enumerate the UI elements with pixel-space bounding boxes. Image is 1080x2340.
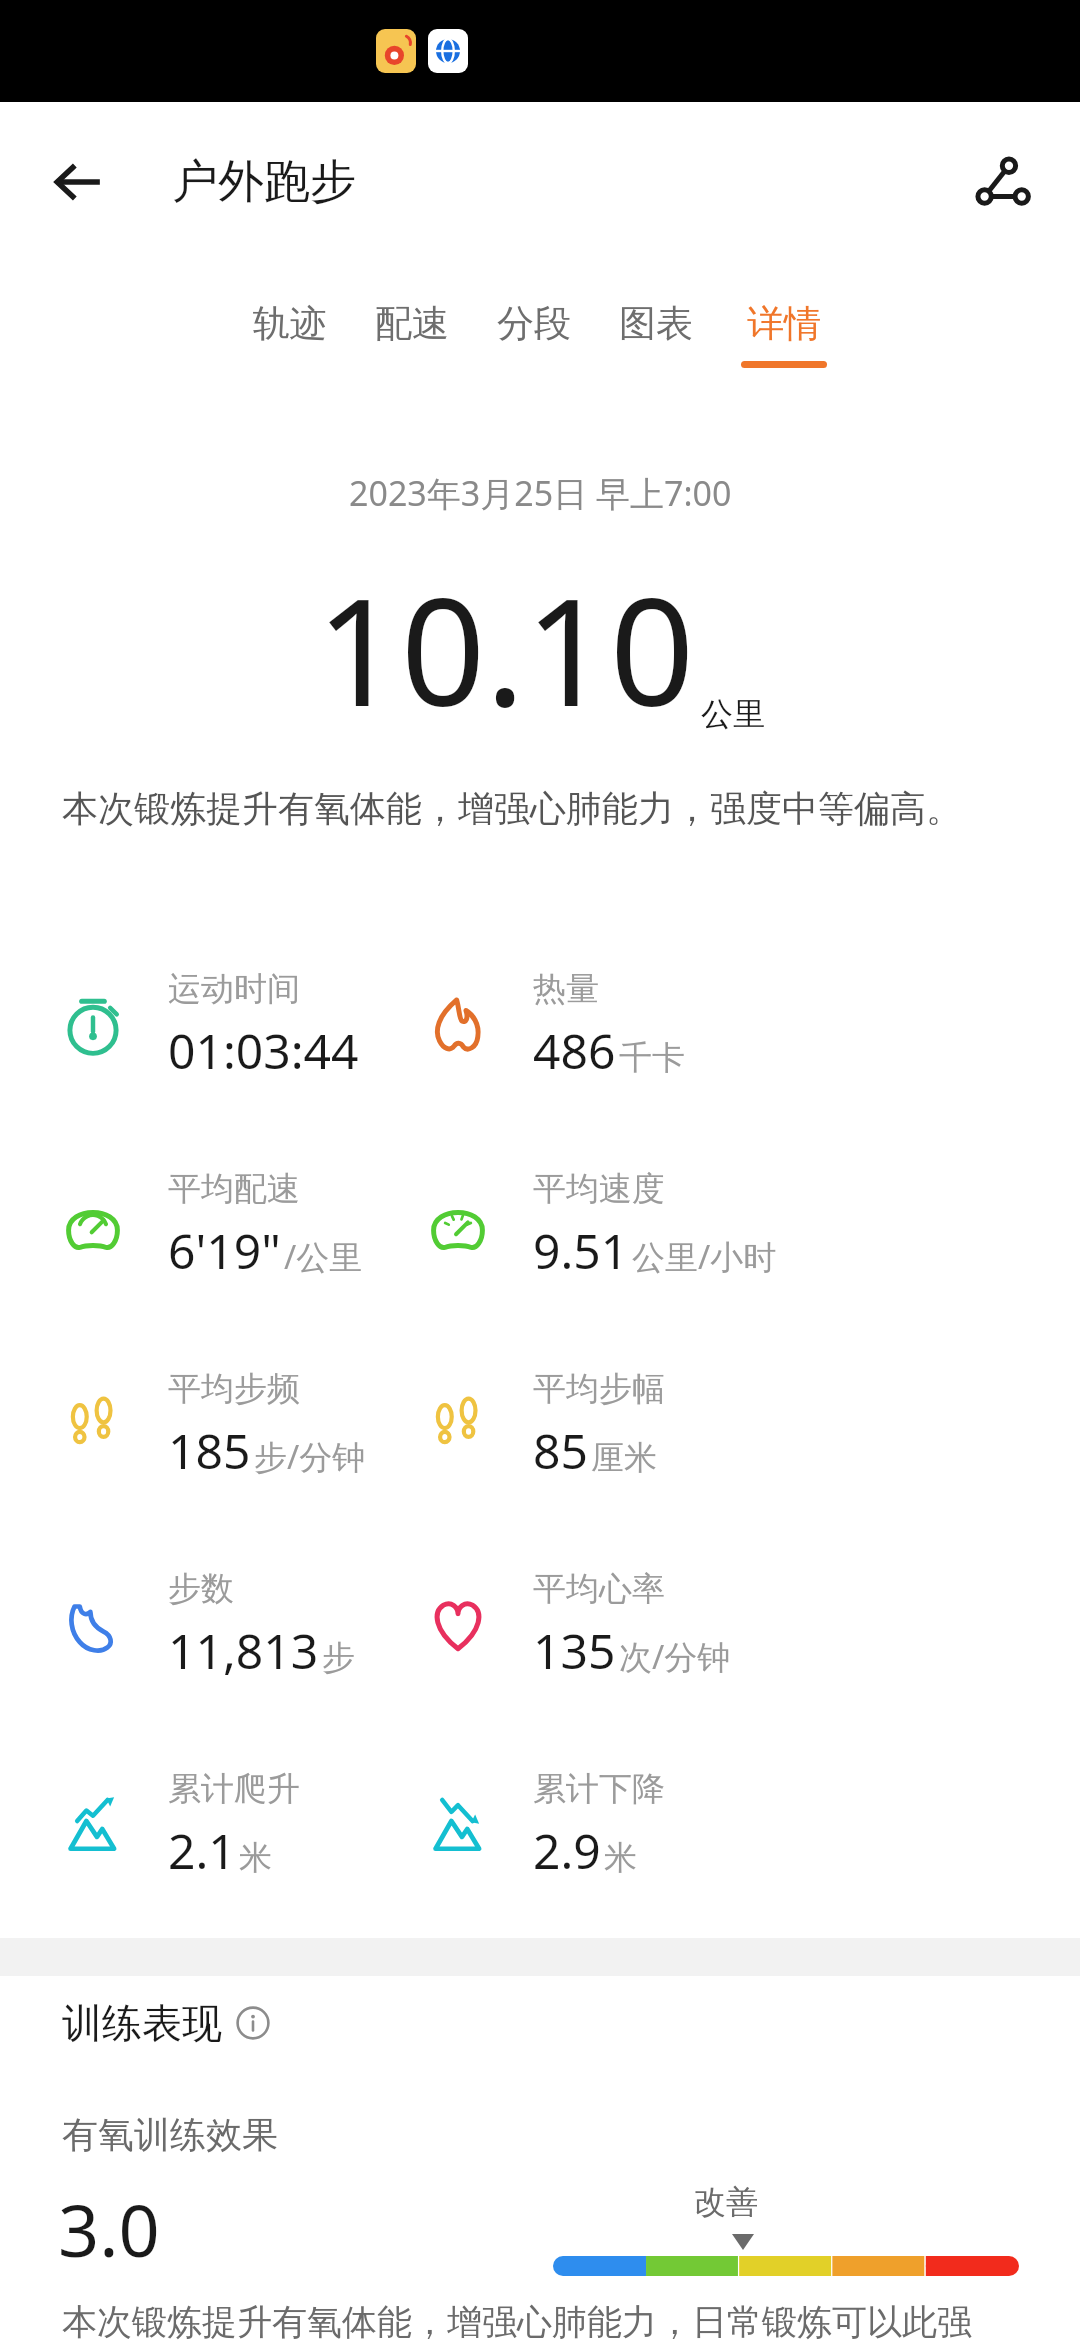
button[interactable]: 平均步幅	[413, 1330, 933, 1520]
button[interactable]: 平均配速	[48, 1130, 568, 1320]
button[interactable]: 累计下降	[413, 1730, 933, 1920]
staticText: 热量	[533, 968, 599, 1010]
staticText: 185	[168, 1418, 251, 1483]
staticText: 累计爬升	[168, 1768, 300, 1810]
button[interactable]: 训练表现	[62, 1998, 270, 2048]
staticText: 轨迹	[253, 300, 327, 347]
staticText: 9.51	[533, 1218, 629, 1283]
button[interactable]: 图表	[619, 300, 693, 361]
staticText: 公里	[701, 694, 765, 734]
staticText: 10.10	[316, 548, 695, 750]
staticText: 步	[322, 1637, 355, 1679]
button[interactable]: Back	[40, 144, 116, 220]
staticText: 3.0	[58, 2180, 160, 2278]
staticText: 步数	[168, 1568, 234, 1610]
staticText: 11,813	[168, 1618, 319, 1683]
staticText: 01:03:44	[168, 1018, 359, 1083]
staticText: 2.1	[168, 1818, 236, 1883]
staticText: 千卡	[619, 1037, 685, 1079]
staticText: 平均配速	[168, 1168, 300, 1210]
staticText: 米	[239, 1837, 272, 1879]
staticText: 训练表现	[62, 1998, 222, 2048]
staticText: 次/分钟	[619, 1634, 731, 1679]
staticText: 累计下降	[533, 1768, 665, 1810]
button[interactable]: 轨迹	[253, 300, 327, 361]
staticText: 户外跑步	[172, 153, 356, 211]
button[interactable]: Share	[960, 140, 1044, 224]
staticText: 2023年3月25日 早上7:00	[349, 470, 732, 516]
staticText: 平均速度	[533, 1168, 665, 1210]
staticText: /公里	[284, 1234, 363, 1279]
staticText: 分段	[497, 300, 571, 347]
staticText: 改善	[694, 2182, 758, 2222]
button[interactable]: 平均步频	[48, 1330, 568, 1520]
staticText: 6'19"	[168, 1218, 281, 1283]
staticText: 厘米	[591, 1437, 657, 1479]
staticText: 本次锻炼提升有氧体能，增强心肺能力，强度中等偏高。	[62, 786, 962, 831]
button[interactable]: 分段	[497, 300, 571, 361]
button[interactable]: 配速	[375, 300, 449, 361]
staticText: 米	[604, 1837, 637, 1879]
button[interactable]: 平均速度	[413, 1130, 933, 1320]
button[interactable]: 步数	[48, 1530, 568, 1720]
staticText: 图表	[619, 300, 693, 347]
staticText: 有氧训练效果	[62, 2112, 278, 2157]
staticText: 配速	[375, 300, 449, 347]
button[interactable]: 热量	[413, 930, 933, 1120]
button[interactable]: 运动时间	[48, 930, 568, 1120]
staticText: 详情	[747, 300, 821, 347]
staticText: 公里/小时	[632, 1234, 777, 1279]
button[interactable]: 详情	[741, 300, 827, 368]
staticText: 平均步频	[168, 1368, 300, 1410]
button[interactable]: 累计爬升	[48, 1730, 568, 1920]
staticText: 本次锻炼提升有氧体能，增强心肺能力，日常锻炼可以此强	[62, 2300, 1062, 2340]
staticText: 平均步幅	[533, 1368, 665, 1410]
staticText: 平均心率	[533, 1568, 665, 1610]
staticText: 486	[533, 1018, 616, 1083]
staticText: 2.9	[533, 1818, 601, 1883]
staticText: 运动时间	[168, 968, 300, 1010]
staticText: 85	[533, 1418, 588, 1483]
staticText: 步/分钟	[254, 1434, 366, 1479]
staticText: 135	[533, 1618, 616, 1683]
button[interactable]: 平均心率	[413, 1530, 933, 1720]
